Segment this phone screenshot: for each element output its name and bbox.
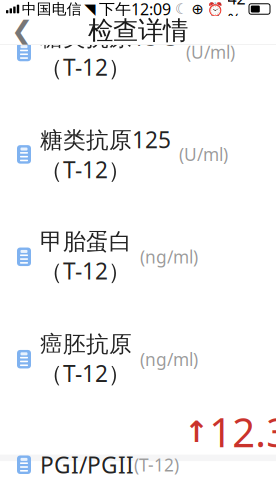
staticText: 下午12:09 xyxy=(99,0,171,20)
staticText: PGI/PGII xyxy=(40,450,134,480)
staticText: (ng/ml) xyxy=(140,245,198,268)
staticText: 糖类抗原15-3（T-12） xyxy=(40,22,178,82)
staticText: ❮ xyxy=(11,15,33,46)
staticText: ☾ xyxy=(175,1,188,17)
staticText: 2.13 xyxy=(63,303,143,356)
staticText: (U/ml) xyxy=(186,40,235,63)
staticText: 癌胚抗原（T-12） xyxy=(40,330,132,388)
button[interactable]: 糖类抗原15-3（T-12） xyxy=(0,5,276,194)
staticText: ◥ xyxy=(84,1,95,17)
staticText: 检查详情 xyxy=(88,15,188,46)
button[interactable]: 糖类抗原125（T-12） xyxy=(0,107,276,297)
staticText: 13.09 xyxy=(93,201,196,255)
staticText: 糖类抗原125（T-12） xyxy=(40,124,171,184)
staticText: (T-12) xyxy=(134,453,179,476)
button[interactable]: 甲胎蛋白（T-12） xyxy=(0,211,276,398)
staticText: 16.70 xyxy=(119,99,222,152)
staticText: ⏰ xyxy=(207,1,224,17)
button[interactable]: 癌胚抗原（T-12） xyxy=(0,313,276,491)
staticText: ↑ xyxy=(184,415,209,448)
staticText: 12.39 xyxy=(209,405,276,458)
staticText: 0 xyxy=(79,172,90,197)
button[interactable]: PGI/PGII xyxy=(0,461,276,491)
staticText: 甲胎蛋白（T-12） xyxy=(40,228,132,286)
staticText: (ng/ml) xyxy=(140,348,198,371)
staticText: 0 xyxy=(79,376,90,401)
staticText: ⊕ xyxy=(191,1,203,17)
staticText: (U/ml) xyxy=(179,143,228,166)
staticText: 42% xyxy=(227,0,245,30)
button[interactable]: 返回 xyxy=(0,15,44,45)
staticText: 0 xyxy=(79,275,90,299)
staticText: 中国电信 xyxy=(22,0,82,18)
